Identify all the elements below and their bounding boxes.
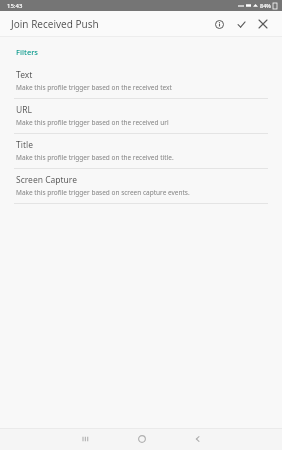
staticText: Text — [16, 69, 33, 81]
staticText: Make this profile trigger based on scree… — [16, 188, 190, 197]
staticText: Screen Capture — [16, 174, 77, 186]
button[interactable]: Home — [114, 428, 170, 450]
staticText: Filters — [16, 47, 39, 57]
staticText: Make this profile trigger based on the r… — [16, 83, 172, 92]
button[interactable]: Close — [252, 13, 274, 35]
staticText: Make this profile trigger based on the r… — [16, 153, 174, 162]
staticText: URL — [16, 104, 32, 116]
button[interactable]: Back — [170, 428, 226, 450]
button[interactable]: URL — [0, 99, 282, 133]
staticText: 84% — [260, 2, 271, 9]
button[interactable]: Screen Capture — [0, 169, 282, 203]
staticText: Join Received Push — [11, 17, 99, 31]
button[interactable]: Recents — [57, 428, 114, 450]
button[interactable]: Title — [0, 134, 282, 168]
staticText: Title — [16, 139, 33, 151]
button[interactable]: Info — [208, 13, 230, 35]
staticText: Make this profile trigger based on the r… — [16, 118, 169, 127]
button[interactable]: Text — [0, 64, 282, 98]
button[interactable]: Confirm — [230, 13, 252, 35]
staticText: 15:43 — [7, 2, 23, 10]
